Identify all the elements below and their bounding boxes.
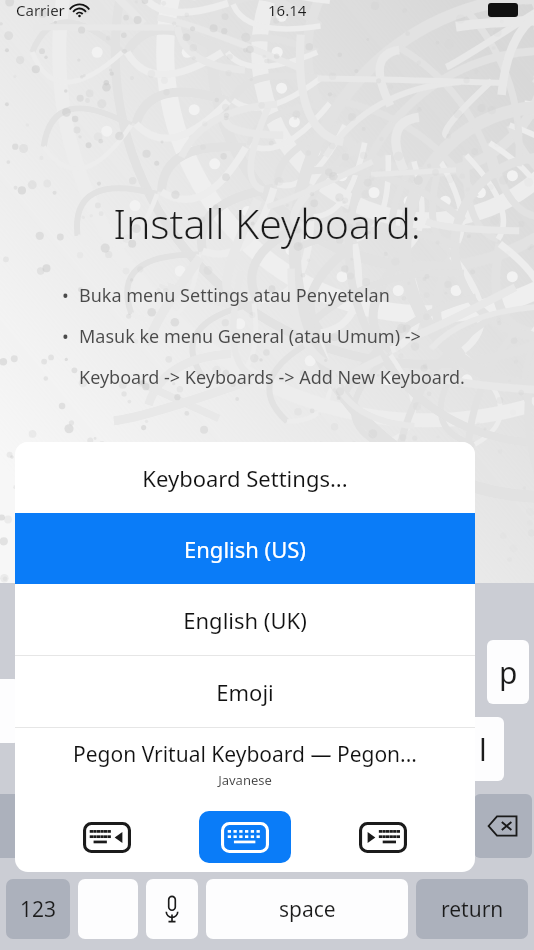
staticText: Javanese (218, 771, 272, 789)
button[interactable]: space (206, 879, 408, 939)
staticText: Install Keyboard: (20, 195, 514, 251)
staticText: space (279, 895, 336, 924)
button[interactable]: p (487, 640, 529, 704)
button[interactable]: English (UK) (15, 584, 475, 655)
staticText: 16.14 (268, 0, 307, 20)
staticText: • (62, 283, 79, 308)
staticText: English (US) (184, 534, 306, 564)
staticText: Keyboard Settings... (142, 463, 348, 493)
staticText: Pegon Vritual Keyboard — Pegon... (73, 740, 417, 769)
staticText: Emoji (216, 677, 274, 707)
button[interactable]: Previous keyboard (75, 814, 139, 860)
button[interactable]: Emoji (15, 656, 475, 727)
staticText: l (479, 729, 487, 770)
staticText: 123 (20, 895, 57, 924)
button[interactable]: Keyboard Settings... (15, 442, 475, 513)
staticText: English (UK) (183, 605, 307, 635)
button[interactable]: Dictation (146, 879, 198, 939)
staticText: Buka menu Settings atau Penyetelan (79, 283, 390, 308)
staticText: • (62, 324, 79, 349)
button[interactable]: Emoji (78, 879, 138, 939)
button[interactable]: Pegon Vritual Keyboard — Pegon... (15, 728, 475, 801)
staticText: return (441, 895, 504, 924)
button[interactable]: 123 (6, 879, 70, 939)
button[interactable] (0, 794, 30, 858)
staticText: Carrier (16, 0, 65, 20)
button[interactable]: English (US) (15, 513, 475, 584)
button[interactable]: return (416, 879, 528, 939)
button[interactable]: Current keyboard (199, 811, 291, 863)
staticText: Masuk ke menu General (atau Umum) -> Key… (79, 324, 504, 389)
staticText: p (499, 652, 518, 693)
button[interactable]: Backspace (474, 794, 532, 858)
button[interactable]: Next keyboard (351, 814, 415, 860)
button[interactable]: l (462, 717, 504, 781)
